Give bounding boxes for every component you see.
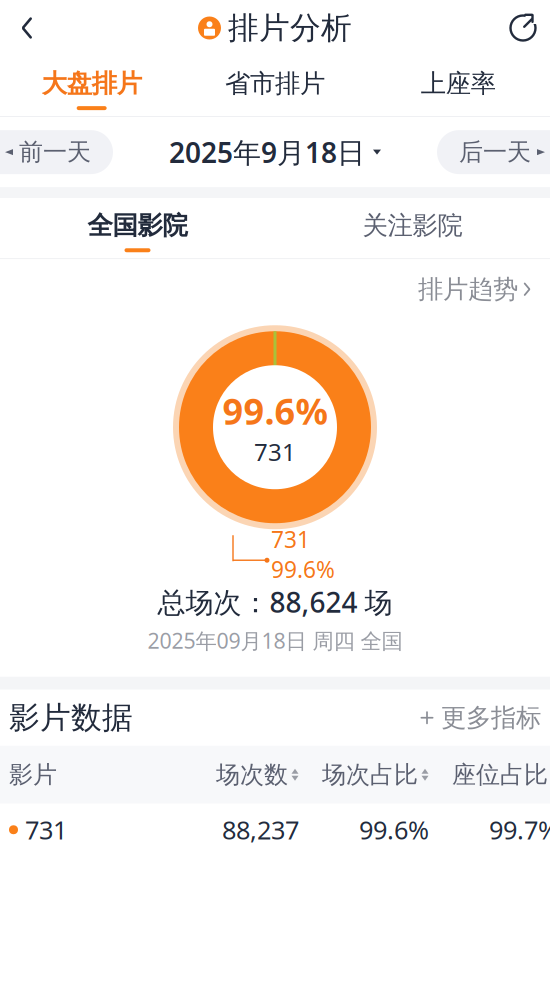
button[interactable]: 2025年9月18日	[159, 130, 391, 174]
staticText: 上座率	[421, 68, 496, 99]
staticText: 关注影院	[362, 210, 462, 241]
staticText: 总场次：88,624 场	[157, 583, 392, 620]
button[interactable]: 返回	[0, 6, 54, 50]
button[interactable]: 分享	[496, 6, 550, 50]
staticText: 731	[271, 524, 310, 554]
button[interactable]: 731	[0, 804, 550, 856]
staticText: 2025年09月18日 周四 全国	[147, 626, 402, 655]
button[interactable]: 前一天	[0, 130, 137, 174]
staticText: 场次数	[216, 760, 288, 789]
staticText: 大盘排片	[42, 68, 142, 99]
staticText: 后一天	[459, 137, 531, 167]
staticText: 99.6%	[359, 813, 429, 846]
button[interactable]: 大盘排片	[0, 56, 183, 116]
button[interactable]: 全国影院	[0, 198, 275, 258]
button[interactable]: 排片趋势	[400, 267, 550, 311]
staticText: 影片	[9, 760, 57, 789]
staticText: 731	[254, 436, 296, 468]
button[interactable]: 更多指标	[420, 702, 541, 733]
staticText: 731	[25, 813, 67, 846]
staticText: 99.6%	[222, 387, 327, 435]
button[interactable]: 省市排片	[183, 56, 367, 116]
staticText: 全国影院	[87, 210, 187, 241]
staticText: 99.6%	[271, 554, 335, 584]
staticText: 更多指标	[441, 702, 541, 733]
button[interactable]: 上座率	[367, 56, 550, 116]
staticText: 99.7%	[489, 813, 550, 846]
staticText: 前一天	[19, 137, 91, 167]
staticText: 场次占比	[322, 760, 418, 789]
staticText: 影片数据	[9, 699, 133, 737]
staticText: 2025年9月18日	[169, 133, 365, 171]
staticText: 排片分析	[228, 9, 352, 47]
staticText: 省市排片	[225, 68, 325, 99]
staticText: 88,237	[222, 813, 299, 846]
staticText: 排片趋势	[418, 274, 518, 305]
button[interactable]: 后一天	[413, 130, 550, 174]
button[interactable]: 关注影院	[275, 198, 550, 258]
staticText: 座位占比	[452, 760, 548, 789]
